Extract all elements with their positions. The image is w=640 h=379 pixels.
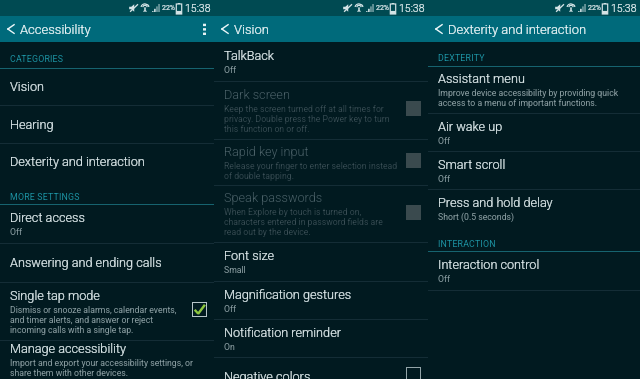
- button[interactable]: Negative colors: [214, 358, 428, 379]
- staticText: Notification reminder: [224, 325, 341, 340]
- button[interactable]: Dark screen: [214, 82, 428, 140]
- staticText: Single tap mode: [10, 288, 100, 303]
- staticText: On: [224, 342, 235, 352]
- staticText: INTERACTION: [438, 239, 496, 249]
- staticText: 15:38: [185, 2, 211, 14]
- staticText: 22%: [376, 4, 389, 12]
- staticText: Interaction control: [438, 257, 540, 272]
- button[interactable]: Magnification gestures: [214, 282, 428, 320]
- button[interactable]: Notification reminder: [214, 320, 428, 358]
- staticText: characters entered in password fields ar…: [224, 217, 383, 227]
- staticText: Magnification gestures: [224, 287, 352, 302]
- button[interactable]: Vision: [0, 69, 214, 106]
- button[interactable]: Direct access: [0, 205, 214, 244]
- button[interactable]: Rapid key input: [214, 140, 428, 186]
- staticText: Off: [438, 174, 451, 184]
- staticText: Release your finger to enter selection i…: [224, 161, 398, 171]
- staticText: Short (0.5 seconds): [438, 212, 515, 222]
- staticText: Dexterity and interaction: [448, 22, 587, 37]
- staticText: Off: [438, 136, 451, 146]
- button[interactable]: Dexterity and interaction: [0, 144, 214, 181]
- staticText: access to a menu of important functions.: [438, 98, 598, 108]
- button[interactable]: Interaction control: [428, 252, 640, 291]
- staticText: CATEGORIES: [10, 54, 64, 64]
- button[interactable]: Air wake up: [428, 114, 640, 152]
- button[interactable]: More options: [194, 16, 214, 42]
- staticText: Smart scroll: [438, 157, 506, 172]
- staticText: Speak passwords: [224, 190, 323, 205]
- staticText: privacy. Double press the Power key to t…: [224, 114, 390, 124]
- staticText: Off: [224, 65, 237, 75]
- staticText: of double tapping.: [224, 171, 294, 181]
- staticText: Off: [10, 227, 23, 237]
- staticText: incoming calls with a single tap.: [10, 325, 134, 335]
- button[interactable]: Smart scroll: [428, 152, 640, 190]
- button[interactable]: Assistant menu: [428, 67, 640, 114]
- staticText: Hearing: [10, 117, 54, 132]
- button[interactable]: Vision: [214, 16, 428, 42]
- staticText: DEXTERITY: [438, 53, 485, 63]
- button[interactable]: Font size: [214, 243, 428, 282]
- button[interactable]: Press and hold delay: [428, 190, 640, 229]
- staticText: Air wake up: [438, 119, 503, 134]
- staticText: Off: [224, 304, 237, 314]
- staticText: Import and export your accessibility set…: [10, 358, 193, 368]
- staticText: share them with other devices.: [10, 368, 129, 378]
- staticText: read out by the device.: [224, 227, 311, 237]
- staticText: Font size: [224, 248, 275, 263]
- staticText: Press and hold delay: [438, 195, 553, 210]
- staticText: Dexterity and interaction: [10, 154, 145, 169]
- button[interactable]: Dexterity and interaction: [428, 16, 640, 42]
- staticText: 15:38: [611, 2, 637, 14]
- button[interactable]: TalkBack: [214, 42, 428, 82]
- button[interactable]: Answering and ending calls: [0, 244, 214, 283]
- staticText: Accessibility: [20, 22, 91, 37]
- button[interactable]: Speak passwords: [214, 186, 428, 243]
- staticText: Dark screen: [224, 87, 290, 102]
- staticText: Manage accessibility: [10, 341, 127, 356]
- staticText: Off: [438, 274, 451, 284]
- staticText: Answering and ending calls: [10, 255, 162, 270]
- staticText: and timer alerts, and answer or reject: [10, 315, 154, 325]
- staticText: Vision: [234, 22, 269, 37]
- staticText: Keep the screen turned off at all times …: [224, 104, 384, 114]
- staticText: 15:38: [399, 2, 425, 14]
- staticText: Improve device accessibility by providin…: [438, 88, 619, 98]
- staticText: Rapid key input: [224, 144, 309, 159]
- button[interactable]: Manage accessibility: [0, 341, 214, 379]
- staticText: Vision: [10, 79, 45, 94]
- staticText: Dismiss or snooze alarms, calendar event…: [10, 305, 177, 315]
- staticText: 22%: [588, 4, 601, 12]
- staticText: Assistant menu: [438, 71, 525, 86]
- button[interactable]: Hearing: [0, 106, 214, 144]
- staticText: When Explore by touch is turned on,: [224, 207, 362, 217]
- staticText: this function on or off.: [224, 124, 310, 134]
- staticText: MORE SETTINGS: [10, 192, 80, 202]
- staticText: Direct access: [10, 210, 85, 225]
- staticText: TalkBack: [224, 48, 275, 63]
- staticText: Negative colors: [224, 369, 311, 379]
- staticText: 22%: [162, 4, 175, 12]
- button[interactable]: Single tap mode: [0, 283, 214, 341]
- staticText: Small: [224, 265, 246, 275]
- button[interactable]: Accessibility: [0, 16, 214, 42]
